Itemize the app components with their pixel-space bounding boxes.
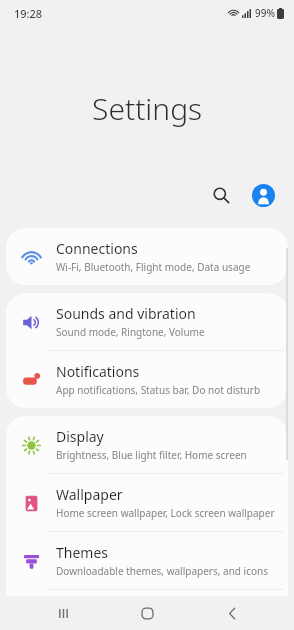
staticText: 99% <box>255 6 275 20</box>
button[interactable]: Back <box>210 596 254 630</box>
button[interactable]: Search <box>202 176 240 214</box>
button[interactable]: Recents <box>41 596 85 630</box>
staticText: Themes <box>56 543 109 562</box>
staticText: Lock screen <box>56 601 134 619</box>
button[interactable]: Home <box>125 596 169 630</box>
staticText: Sound mode, Ringtone, Volume <box>56 325 205 339</box>
staticText: Wi-Fi, Bluetooth, Flight mode, Data usag… <box>56 260 251 274</box>
staticText: Brightness, Blue light filter, Home scre… <box>56 448 247 462</box>
staticText: Settings <box>92 88 203 129</box>
staticText: App notifications, Status bar, Do not di… <box>56 383 261 397</box>
staticText: Wallpaper <box>56 485 123 504</box>
button[interactable]: Lock screen <box>6 590 288 630</box>
button[interactable]: Connections <box>6 228 288 285</box>
button[interactable]: Sounds and vibration <box>6 293 288 350</box>
staticText: 19:28 <box>14 6 43 21</box>
button[interactable]: Wallpaper <box>6 474 288 531</box>
button[interactable]: Notifications <box>6 351 288 408</box>
staticText: Notifications <box>56 362 140 381</box>
staticText: Sounds and vibration <box>56 304 196 323</box>
staticText: Downloadable themes, wallpapers, and ico… <box>56 564 268 578</box>
staticText: Display <box>56 427 104 446</box>
staticText: Home screen wallpaper, Lock screen wallp… <box>56 506 275 520</box>
button[interactable]: Account <box>244 176 282 214</box>
button[interactable]: Display <box>6 416 288 473</box>
button[interactable]: Themes <box>6 532 288 589</box>
staticText: Connections <box>56 239 138 258</box>
